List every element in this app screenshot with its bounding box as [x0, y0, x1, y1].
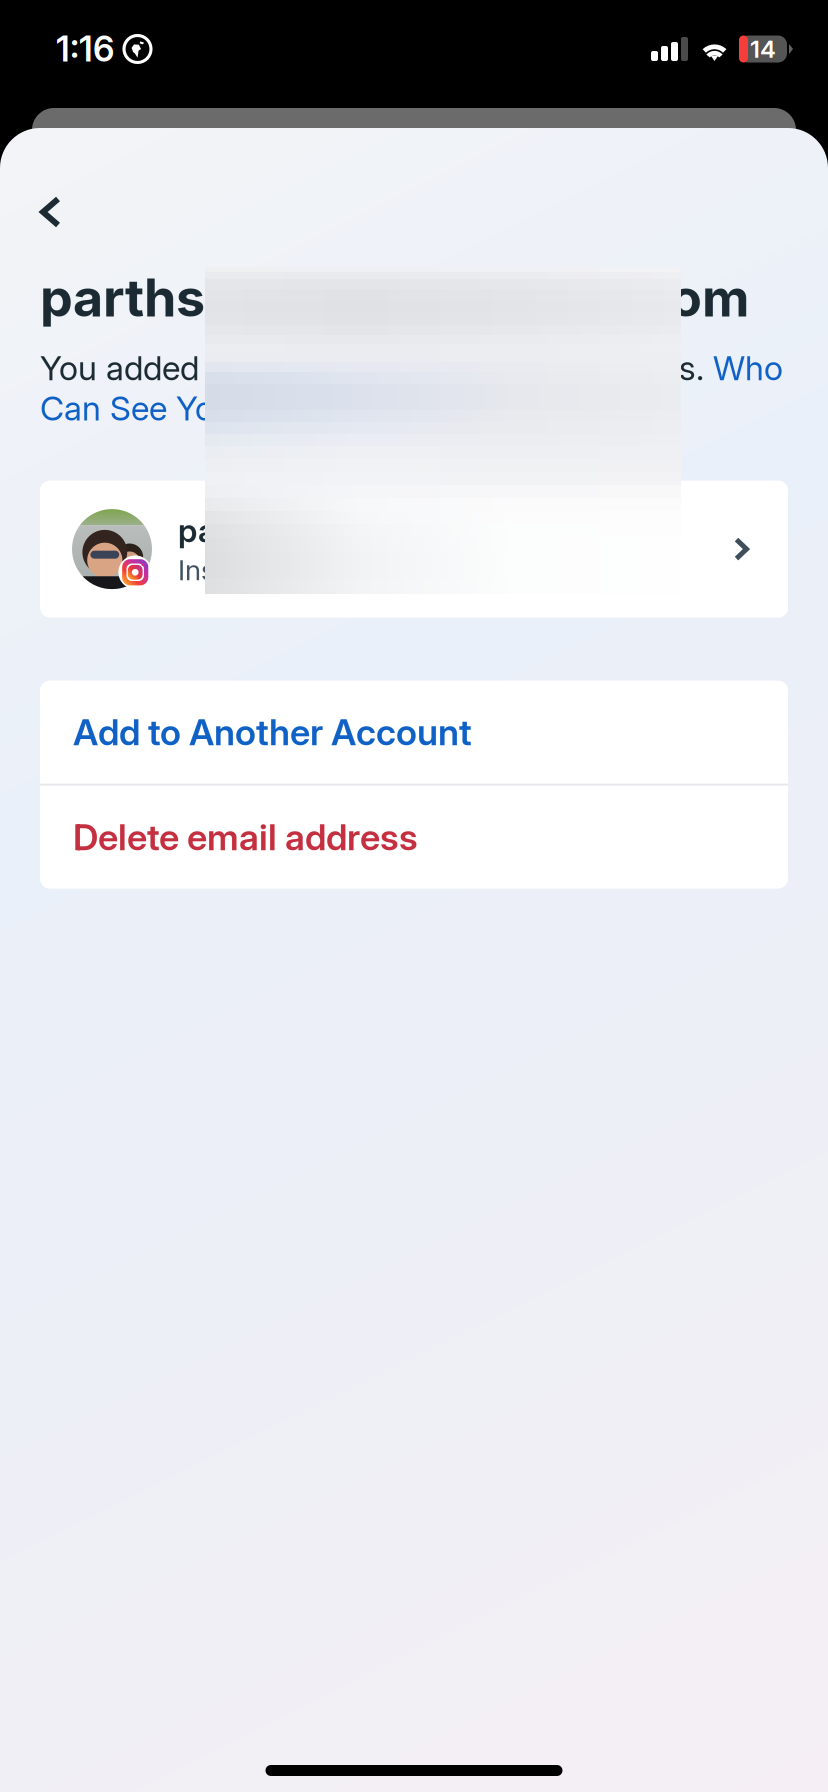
button[interactable]: Delete email address	[40, 786, 788, 889]
staticText: 1:16	[56, 28, 114, 70]
staticText: parthsmehta24	[178, 511, 411, 550]
staticText: Add to Another Account	[73, 710, 472, 754]
staticText: 14	[750, 34, 776, 63]
button[interactable]: Back	[0, 128, 95, 266]
staticText: Delete email address	[73, 815, 418, 859]
button[interactable]: Add to Another Account	[40, 681, 788, 784]
staticText: You added this email to your other accou…	[40, 348, 783, 429]
button[interactable]: parthsmehta24	[40, 481, 788, 618]
staticText: parthsmehta24@gmail.com	[40, 266, 749, 329]
staticText: Instagram	[178, 553, 305, 587]
